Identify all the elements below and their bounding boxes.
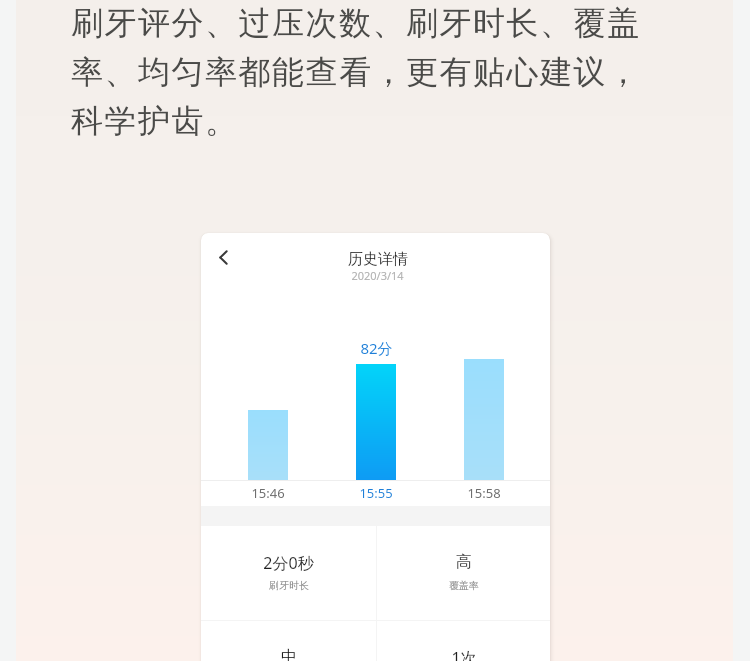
staticText: 15:46 bbox=[251, 484, 285, 502]
staticText: 科学护齿。 bbox=[71, 101, 239, 141]
button[interactable]: 2分0秒 bbox=[201, 526, 376, 620]
staticText: 15:58 bbox=[467, 484, 501, 502]
staticText: 覆盖率 bbox=[449, 579, 479, 592]
staticText: 15:55 bbox=[359, 484, 393, 502]
staticText: 1次 bbox=[451, 647, 477, 661]
button[interactable]: 1次 bbox=[377, 621, 550, 661]
button[interactable]: Back bbox=[208, 242, 238, 272]
staticText: 82分 bbox=[360, 338, 393, 358]
staticText: 高 bbox=[456, 552, 472, 572]
staticText: 率、均匀率都能查看，更有贴心建议， bbox=[71, 52, 641, 92]
staticText: 2020/3/14 bbox=[351, 268, 404, 283]
staticText: 中 bbox=[281, 647, 297, 661]
button[interactable]: 高 bbox=[377, 526, 550, 620]
staticText: 历史详情 bbox=[348, 250, 408, 269]
staticText: 2分0秒 bbox=[263, 552, 314, 574]
staticText: 刷牙评分、过压次数、刷牙时长、覆盖 bbox=[71, 3, 641, 43]
button[interactable]: 中 bbox=[201, 621, 376, 661]
staticText: 刷牙时长 bbox=[269, 579, 309, 592]
